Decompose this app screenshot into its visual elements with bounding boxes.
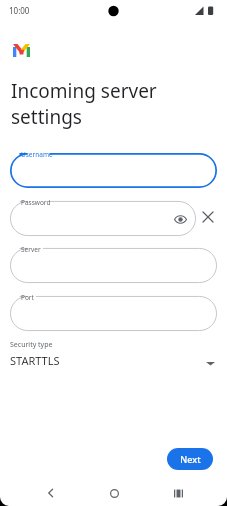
staticText: 10:00 (9, 5, 30, 16)
button[interactable]: Port (10, 296, 217, 331)
button[interactable]: Recent apps (170, 485, 186, 501)
button[interactable]: Password (10, 201, 196, 236)
button[interactable]: Security type (10, 340, 217, 376)
button[interactable]: Next (167, 448, 213, 470)
staticText: Incoming server settings (11, 78, 157, 129)
staticText: Username (21, 150, 53, 159)
staticText: Security type (10, 340, 53, 350)
staticText: Password (21, 198, 51, 207)
button[interactable]: Back (43, 485, 59, 501)
staticText: Port (21, 293, 34, 302)
staticText: Server (21, 245, 41, 254)
staticText: Next (180, 453, 201, 465)
button[interactable]: Clear password (199, 208, 217, 226)
button[interactable]: Show password (172, 211, 188, 227)
button[interactable]: Home (106, 485, 122, 501)
button[interactable]: Server (10, 248, 217, 283)
staticText: STARTTLS (10, 353, 60, 368)
button[interactable]: Username (10, 153, 217, 188)
